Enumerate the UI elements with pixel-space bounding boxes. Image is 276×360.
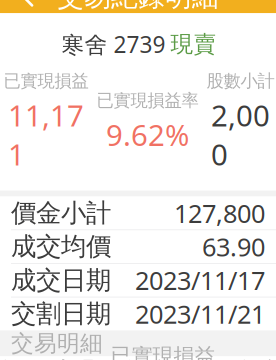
staticText: 9.62% — [106, 115, 189, 154]
staticText: 2023/11/17 — [135, 263, 265, 297]
staticText: 成交均價 — [11, 231, 111, 262]
button[interactable]: 價金 — [224, 356, 276, 360]
staticText: 交易紀錄明細 — [57, 0, 219, 13]
staticText: 63.90 — [202, 230, 265, 263]
staticText: 2,000 — [211, 96, 270, 173]
staticText: 股數小計 — [206, 70, 274, 92]
button[interactable]: Back — [6, 0, 50, 19]
staticText: 已實現損益率 — [96, 90, 198, 111]
staticText: 寒舍 2739 — [61, 29, 165, 59]
staticText: 11,171 — [8, 96, 84, 173]
staticText: 交易明細 — [11, 329, 103, 357]
staticText: 現賣 — [170, 30, 216, 58]
button[interactable]: 已實現損益率 — [104, 343, 224, 360]
staticText: 已實現損益 — [3, 70, 88, 92]
staticText: 交割日期 — [11, 298, 111, 329]
staticText: 已實現 — [32, 356, 95, 360]
staticText: 2023/11/21 — [135, 297, 265, 331]
button[interactable]: 已實現 — [29, 356, 104, 360]
staticText: 127,800 — [174, 196, 265, 230]
staticText: 價金小計 — [11, 197, 111, 229]
staticText: 價金 — [238, 356, 276, 360]
staticText: 成交日期 — [11, 265, 111, 296]
staticText: 已實現損益率 — [110, 343, 215, 360]
